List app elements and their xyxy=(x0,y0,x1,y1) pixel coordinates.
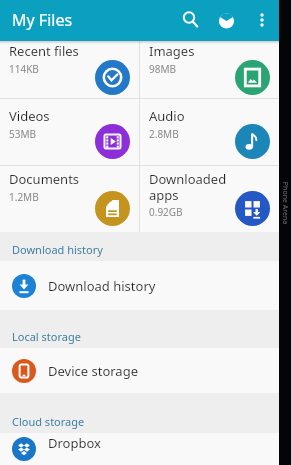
staticText: Audio xyxy=(149,107,185,125)
staticText: Device storage xyxy=(48,362,138,380)
staticText: Dropbox xyxy=(48,434,101,452)
staticText: My Files xyxy=(12,9,73,31)
button[interactable] xyxy=(208,0,245,41)
button[interactable]: Downloaded apps xyxy=(140,166,279,232)
button[interactable]: Recent files xyxy=(0,41,139,98)
staticText: Videos xyxy=(9,107,50,125)
staticText: Phone Arena xyxy=(280,168,290,238)
staticText: Images xyxy=(149,42,195,60)
button[interactable] xyxy=(172,0,208,41)
staticText: Cloud storage xyxy=(12,414,85,429)
button[interactable]: Images xyxy=(140,41,279,98)
staticText: Download history xyxy=(48,277,156,295)
button[interactable]: Documents xyxy=(0,166,139,232)
staticText: 2.8MB xyxy=(149,127,179,141)
button[interactable]: Device storage xyxy=(0,348,279,393)
button[interactable]: Audio xyxy=(140,99,279,165)
staticText: Recent files xyxy=(9,42,79,60)
staticText: 114KB xyxy=(9,62,39,76)
staticText: 1.2MB xyxy=(9,190,39,204)
staticText: 98MB xyxy=(149,62,177,76)
staticText: Download history xyxy=(12,242,103,257)
button[interactable]: Videos xyxy=(0,99,139,165)
staticText: 53MB xyxy=(9,127,37,141)
staticText: Downloaded apps xyxy=(149,170,227,203)
button[interactable]: Dropbox xyxy=(0,433,279,465)
staticText: Local storage xyxy=(12,329,81,344)
button[interactable] xyxy=(245,0,279,41)
button[interactable]: Download history xyxy=(0,261,279,310)
staticText: 0.92GB xyxy=(149,205,183,219)
staticText: Documents xyxy=(9,170,80,188)
